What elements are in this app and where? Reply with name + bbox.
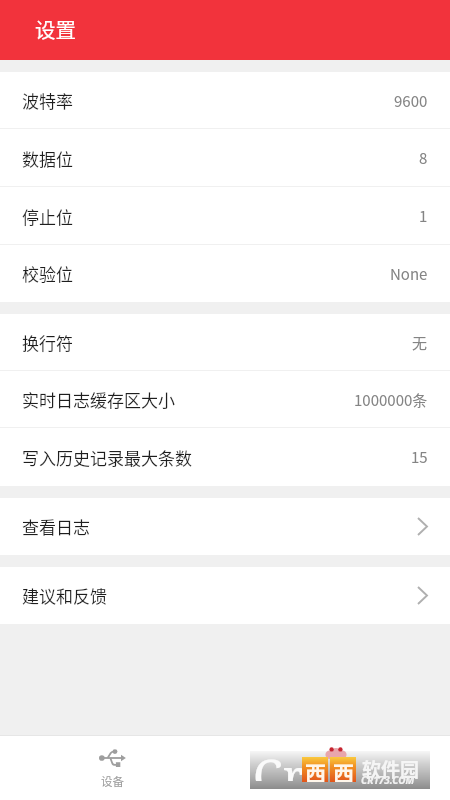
button[interactable]: 换行符 [0, 314, 450, 371]
staticText: 波特率 [22, 88, 73, 113]
staticText: 写入历史记录最大条数 [22, 445, 192, 470]
staticText: 实时日志缓存区大小 [22, 387, 175, 412]
staticText: 换行符 [22, 330, 73, 355]
staticText: 设备 [101, 773, 124, 790]
staticText: 建议和反馈 [22, 583, 107, 608]
button[interactable]: 实时日志缓存区大小 [0, 371, 450, 428]
button[interactable]: 停止位 [0, 187, 450, 245]
button[interactable]: 建议和反馈 [0, 567, 450, 624]
staticText: 1000000条 [354, 389, 428, 411]
staticText: CR173.COM [361, 773, 415, 787]
staticText: 1 [419, 205, 428, 227]
button[interactable]: 写入历史记录最大条数 [0, 428, 450, 486]
staticText: 查看日志 [22, 514, 90, 539]
staticText: 数据位 [22, 146, 73, 171]
staticText: 西 [333, 757, 354, 782]
staticText: 9600 [394, 90, 428, 112]
button[interactable]: 校验位 [0, 245, 450, 302]
staticText: 15 [411, 446, 428, 468]
button[interactable]: 查看日志 [0, 498, 450, 555]
staticText: 停止位 [22, 204, 73, 229]
staticText: 西 [305, 757, 326, 782]
staticText: 无 [412, 332, 428, 354]
staticText: 设置 [35, 14, 76, 44]
staticText: 校验位 [22, 261, 73, 286]
staticText: None [390, 263, 428, 285]
button[interactable]: 波特率 [0, 72, 450, 129]
button[interactable]: 设备 [0, 735, 225, 800]
staticText: 8 [419, 147, 428, 169]
button[interactable]: 数据位 [0, 129, 450, 187]
staticText: 软件园 [362, 755, 420, 783]
staticText: Cr [253, 743, 306, 781]
